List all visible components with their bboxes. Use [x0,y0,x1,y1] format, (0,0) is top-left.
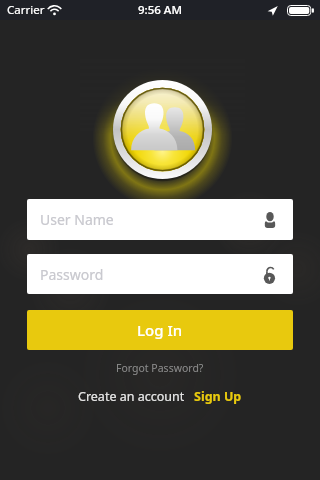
staticText: Carrier [7,2,45,18]
other: User name [264,212,276,228]
staticText: Forgot Password? [116,361,204,375]
staticText: Password [40,265,104,284]
staticText: 9:56 AM [138,2,182,18]
button[interactable]: Sign Up [194,387,242,405]
button[interactable]: Log In [27,310,293,350]
button[interactable]: User Name [27,199,293,240]
button[interactable]: Forgot Password? [0,357,320,378]
button[interactable]: Password [27,254,293,294]
staticText: User Name [40,210,114,229]
staticText: Sign Up [194,388,242,404]
staticText: Log In [137,320,183,340]
staticText: Create an account [78,388,185,405]
other: Show password [263,265,277,283]
